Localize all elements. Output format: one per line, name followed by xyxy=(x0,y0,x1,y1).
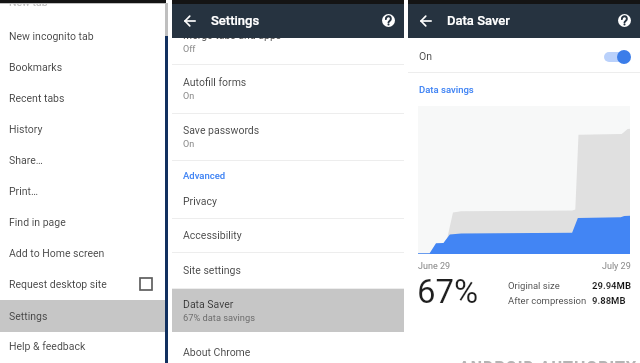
button[interactable]: About Chrome xyxy=(172,337,404,363)
button[interactable]: Help xyxy=(375,7,401,33)
button[interactable]: Add to Home screen xyxy=(0,238,166,268)
staticText: Accessibility xyxy=(183,229,242,241)
staticText: After compression xyxy=(508,295,587,306)
button[interactable]: Find in page xyxy=(0,207,166,237)
staticText: On xyxy=(419,50,433,62)
staticText: Share… xyxy=(9,154,43,166)
staticText: Settings xyxy=(211,13,260,28)
staticText: Data Saver xyxy=(183,298,234,310)
button[interactable]: Recent tabs xyxy=(0,83,166,113)
staticText: Original size xyxy=(508,280,560,291)
button[interactable]: Autofill forms xyxy=(172,76,404,112)
button[interactable]: Share… xyxy=(0,145,166,175)
button[interactable]: Save passwords xyxy=(172,124,404,160)
button[interactable]: Privacy xyxy=(172,186,404,216)
staticText: Request desktop site xyxy=(9,278,107,290)
button[interactable]: Back xyxy=(413,8,439,34)
button[interactable]: History xyxy=(0,114,166,144)
button[interactable]: Settings xyxy=(0,300,166,332)
staticText: Advanced xyxy=(183,170,226,181)
staticText: Data Saver xyxy=(447,13,510,28)
button[interactable]: Data Saver xyxy=(172,289,404,332)
staticText: July 29 xyxy=(602,261,631,272)
button[interactable]: Request desktop site xyxy=(0,269,166,299)
staticText: 67% data savings xyxy=(183,312,255,323)
button[interactable]: Site settings xyxy=(172,255,404,285)
button[interactable]: Back xyxy=(177,8,203,34)
button[interactable]: Help & feedback xyxy=(0,331,166,361)
staticText: 9.88MB xyxy=(592,295,626,306)
staticText: Help & feedback xyxy=(9,340,86,352)
button[interactable]: Help xyxy=(611,7,637,33)
staticText: On xyxy=(183,91,195,102)
staticText: ANDROID AUTHORITY xyxy=(459,358,637,363)
staticText: History xyxy=(9,123,43,135)
staticText: Privacy xyxy=(183,195,217,207)
staticText: June 29 xyxy=(418,261,451,272)
staticText: Save passwords xyxy=(183,124,260,136)
staticText: Settings xyxy=(9,310,48,322)
staticText: New incognito tab xyxy=(9,30,94,42)
staticText: Data savings xyxy=(419,84,474,95)
button[interactable]: New incognito tab xyxy=(0,21,166,51)
button[interactable]: Print… xyxy=(0,176,166,206)
staticText: Off xyxy=(183,44,196,55)
staticText: Merge tabs and apps xyxy=(183,29,282,41)
staticText: Print… xyxy=(9,185,38,197)
staticText: Autofill forms xyxy=(183,76,247,88)
staticText: Site settings xyxy=(183,264,241,276)
staticText: New tab xyxy=(9,0,48,8)
staticText: 29.94MB xyxy=(592,280,631,291)
button[interactable]: On xyxy=(408,40,640,72)
staticText: Add to Home screen xyxy=(9,247,105,259)
staticText: On xyxy=(183,139,195,150)
staticText: 67% xyxy=(417,272,479,311)
staticText: About Chrome xyxy=(183,346,251,358)
staticText: Bookmarks xyxy=(9,61,63,73)
button[interactable]: Bookmarks xyxy=(0,52,166,82)
staticText: Recent tabs xyxy=(9,92,65,104)
staticText: Find in page xyxy=(9,216,66,228)
button[interactable]: Accessibility xyxy=(172,220,404,250)
